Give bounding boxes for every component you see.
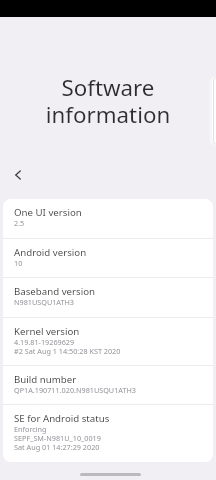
staticText: Software information [0,72,216,129]
button[interactable]: Build number [3,366,213,405]
button[interactable]: Baseband version [3,278,213,318]
staticText: 4.19.81-19269629 [14,337,75,347]
staticText: Android version [14,246,87,259]
button[interactable]: SE for Android status [3,405,213,462]
staticText: Build number [14,373,77,386]
button[interactable]: Edge panel handle [208,75,216,147]
button[interactable]: One UI version [3,199,213,239]
staticText: One UI version [14,206,82,219]
staticText: QP1A.190711.020.N981USQU1ATH3 [14,385,136,395]
button[interactable]: Android version [3,239,213,278]
staticText: N981USQU1ATH3 [14,297,75,307]
staticText: Baseband version [14,285,96,298]
staticText: SE for Android status [14,412,110,425]
staticText: 2.5 [14,218,25,228]
staticText: SEPF_SM-N981U_10_0019 [14,433,101,443]
staticText: Enforcing [14,424,47,434]
staticText: 10 [14,258,23,268]
staticText: Sat Aug 01 14:27:29 2020 [14,442,100,452]
button[interactable]: Kernel version [3,318,213,366]
staticText: Kernel version [14,325,80,338]
button[interactable]: Navigate up [6,163,30,187]
staticText: #2 Sat Aug 1 14:50:28 KST 2020 [14,346,121,356]
